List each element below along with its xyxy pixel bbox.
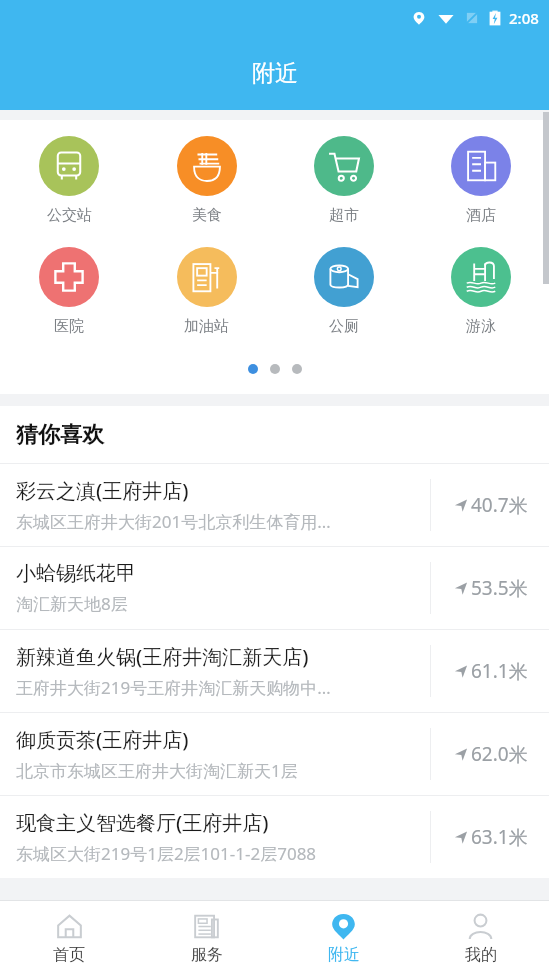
staticText: 61.1米 <box>471 658 528 684</box>
staticText: 东城区大街219号1层2层101-1-2层7088 <box>16 842 317 865</box>
button[interactable]: 新辣道鱼火锅(王府井淘汇新天店) <box>0 630 549 712</box>
staticText: 医院 <box>54 317 84 336</box>
staticText: 小蛤锡纸花甲 <box>16 561 136 586</box>
button[interactable]: 公交站 <box>0 136 138 225</box>
staticText: 王府井大街219号王府井淘汇新天购物中… <box>16 676 331 699</box>
button[interactable]: 酒店 <box>412 136 549 225</box>
staticText: 酒店 <box>466 206 496 225</box>
staticText: 附近 <box>328 945 360 965</box>
button[interactable]: 小蛤锡纸花甲 <box>0 547 549 629</box>
button[interactable]: 附近 <box>275 901 412 976</box>
staticText: 彩云之滇(王府井店) <box>16 477 189 504</box>
staticText: 游泳 <box>466 317 496 336</box>
button[interactable]: 我的 <box>412 901 549 976</box>
button[interactable]: 医院 <box>0 247 138 336</box>
staticText: 超市 <box>329 206 359 225</box>
button[interactable]: 超市 <box>275 136 412 225</box>
staticText: 53.5米 <box>471 575 528 601</box>
staticText: 我的 <box>465 945 497 965</box>
staticText: 新辣道鱼火锅(王府井淘汇新天店) <box>16 643 309 670</box>
staticText: 服务 <box>191 945 223 965</box>
staticText: 附近 <box>252 59 298 88</box>
button[interactable]: 现食主义智选餐厅(王府井店) <box>0 796 549 878</box>
staticText: 东城区王府井大街201号北京利生体育用… <box>16 510 331 533</box>
staticText: 美食 <box>192 206 222 225</box>
staticText: 62.0米 <box>471 741 528 767</box>
staticText: 公厕 <box>329 317 359 336</box>
staticText: 北京市东城区王府井大街淘汇新天1层 <box>16 759 298 782</box>
staticText: 公交站 <box>47 206 92 225</box>
button[interactable]: 公厕 <box>275 247 412 336</box>
staticText: 淘汇新天地8层 <box>16 592 128 615</box>
staticText: 猜你喜欢 <box>16 421 104 449</box>
staticText: 御质贡茶(王府井店) <box>16 726 189 753</box>
button[interactable]: 美食 <box>138 136 275 225</box>
staticText: 加油站 <box>184 317 229 336</box>
staticText: 首页 <box>53 945 85 965</box>
button[interactable]: 首页 <box>0 901 138 976</box>
staticText: 2:08 <box>509 8 539 28</box>
staticText: 现食主义智选餐厅(王府井店) <box>16 809 269 836</box>
button[interactable]: 游泳 <box>412 247 549 336</box>
button[interactable]: 加油站 <box>138 247 275 336</box>
staticText: 40.7米 <box>471 492 528 518</box>
button[interactable]: 服务 <box>138 901 275 976</box>
button[interactable]: 御质贡茶(王府井店) <box>0 713 549 795</box>
button[interactable]: 彩云之滇(王府井店) <box>0 464 549 546</box>
staticText: 63.1米 <box>471 824 528 850</box>
